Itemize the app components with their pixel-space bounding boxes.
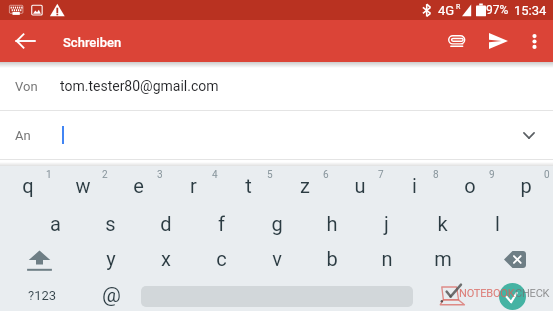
button[interactable]: g	[249, 205, 304, 241]
staticText: k	[437, 212, 448, 235]
button[interactable]: Send	[479, 20, 517, 62]
button[interactable]: n	[359, 240, 414, 276]
button[interactable]: w	[55, 167, 110, 203]
staticText: a	[50, 212, 61, 235]
staticText: CHECK	[515, 287, 550, 300]
staticText: y	[106, 247, 116, 270]
staticText: h	[326, 212, 338, 235]
button[interactable]: Back	[3, 20, 47, 62]
button[interactable]: c	[194, 240, 249, 276]
button[interactable]: Shift	[11, 242, 67, 278]
staticText: z	[300, 174, 310, 197]
button[interactable]: o	[442, 167, 497, 203]
staticText: w	[75, 174, 91, 197]
button[interactable]: s	[83, 205, 138, 241]
button[interactable]: p	[498, 167, 553, 203]
button[interactable]: Show CC and BCC fields	[509, 111, 549, 159]
staticText: v	[272, 247, 282, 270]
button[interactable]: d	[138, 205, 193, 241]
staticText: j	[384, 212, 389, 235]
staticText: 15:34	[514, 3, 547, 18]
button[interactable]: b	[304, 240, 359, 276]
staticText: s	[105, 212, 116, 235]
staticText: m	[434, 247, 452, 270]
staticText: 4	[212, 169, 218, 181]
button[interactable]: x	[138, 240, 193, 276]
staticText: p	[520, 174, 532, 197]
staticText: q	[22, 174, 34, 197]
button[interactable]: r	[166, 167, 221, 203]
staticText: i	[412, 174, 417, 197]
button[interactable]: z	[277, 167, 332, 203]
staticText: f	[218, 212, 225, 235]
staticText: t	[245, 174, 252, 197]
staticText: e	[133, 174, 144, 197]
button[interactable]: e	[111, 167, 166, 203]
staticText: 7	[378, 169, 384, 181]
staticText: o	[464, 174, 476, 197]
staticText: 9	[489, 169, 495, 181]
staticText: ?123	[28, 288, 57, 303]
staticText: u	[354, 174, 366, 197]
button[interactable]: l	[470, 205, 525, 241]
button[interactable]: More options	[519, 20, 549, 62]
button[interactable]: t	[221, 167, 276, 203]
button[interactable]: Von	[0, 62, 553, 110]
button[interactable]: @	[83, 279, 139, 311]
button[interactable]: Symbols	[14, 279, 70, 311]
staticText: c	[216, 247, 227, 270]
staticText: 1	[46, 169, 52, 181]
staticText: 5	[267, 169, 273, 181]
staticText: 2	[102, 169, 108, 181]
staticText: Von	[15, 79, 38, 94]
button[interactable]: v	[249, 240, 304, 276]
staticText: NOTEBOOK	[459, 287, 515, 300]
staticText: 4G	[438, 3, 455, 18]
button[interactable]: k	[415, 205, 470, 241]
staticText: d	[160, 212, 172, 235]
button[interactable]: i	[387, 167, 442, 203]
staticText: Schreiben	[63, 35, 122, 50]
staticText: 3	[157, 169, 163, 181]
button[interactable]: q	[0, 167, 55, 203]
button[interactable]: Enter	[499, 283, 526, 310]
staticText: b	[326, 247, 338, 270]
staticText: An	[15, 128, 31, 143]
button[interactable]: Attach file	[437, 20, 476, 62]
staticText: 97%	[486, 3, 509, 17]
button[interactable]: j	[359, 205, 414, 241]
staticText: n	[381, 247, 393, 270]
button[interactable]: f	[194, 205, 249, 241]
staticText: r	[190, 174, 197, 197]
button[interactable]: h	[304, 205, 359, 241]
staticText: tom.tester80@gmail.com	[60, 78, 219, 94]
staticText: 0	[544, 169, 550, 181]
staticText: l	[495, 212, 500, 235]
button[interactable]: m	[415, 240, 470, 276]
staticText: 6	[323, 169, 329, 181]
staticText: x	[161, 247, 171, 270]
staticText: R	[456, 3, 461, 11]
button[interactable]: u	[332, 167, 387, 203]
staticText: 8	[433, 169, 439, 181]
button[interactable]: y	[83, 240, 138, 276]
staticText: @	[102, 283, 121, 308]
button[interactable]: a	[28, 205, 83, 241]
button[interactable]: An	[0, 111, 553, 159]
staticText: g	[271, 212, 283, 235]
button[interactable]: Backspace	[487, 241, 543, 277]
